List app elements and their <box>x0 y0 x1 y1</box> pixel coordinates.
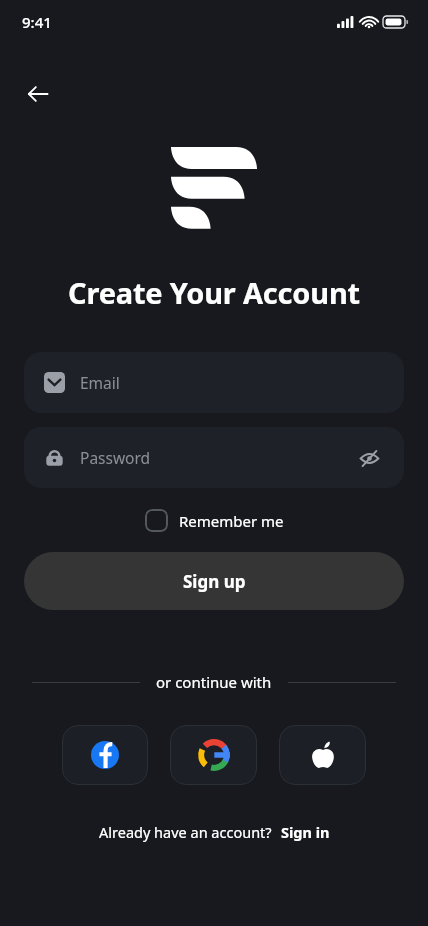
staticText: Sign in <box>281 822 330 842</box>
button[interactable]: Email <box>24 352 404 413</box>
button[interactable]: Password <box>24 427 404 488</box>
button[interactable]: Remember me <box>141 505 288 536</box>
button[interactable]: Show password <box>354 443 384 473</box>
staticText: Password <box>80 447 354 468</box>
staticText: 9:41 <box>22 12 52 32</box>
staticText: or continue with <box>156 672 272 692</box>
button[interactable]: Sign up with Apple <box>279 725 366 785</box>
staticText: Already have an account? <box>99 822 272 842</box>
button[interactable]: Sign up with Google <box>170 725 257 785</box>
staticText: Remember me <box>179 511 284 531</box>
button[interactable]: Sign up with Facebook <box>62 725 148 785</box>
staticText: Create Your Account <box>0 273 428 312</box>
button[interactable]: Sign up <box>24 552 404 610</box>
staticText: Email <box>80 372 384 393</box>
button[interactable]: Back <box>14 70 62 118</box>
button[interactable]: Sign in <box>281 822 330 842</box>
staticText: Sign up <box>183 570 246 593</box>
